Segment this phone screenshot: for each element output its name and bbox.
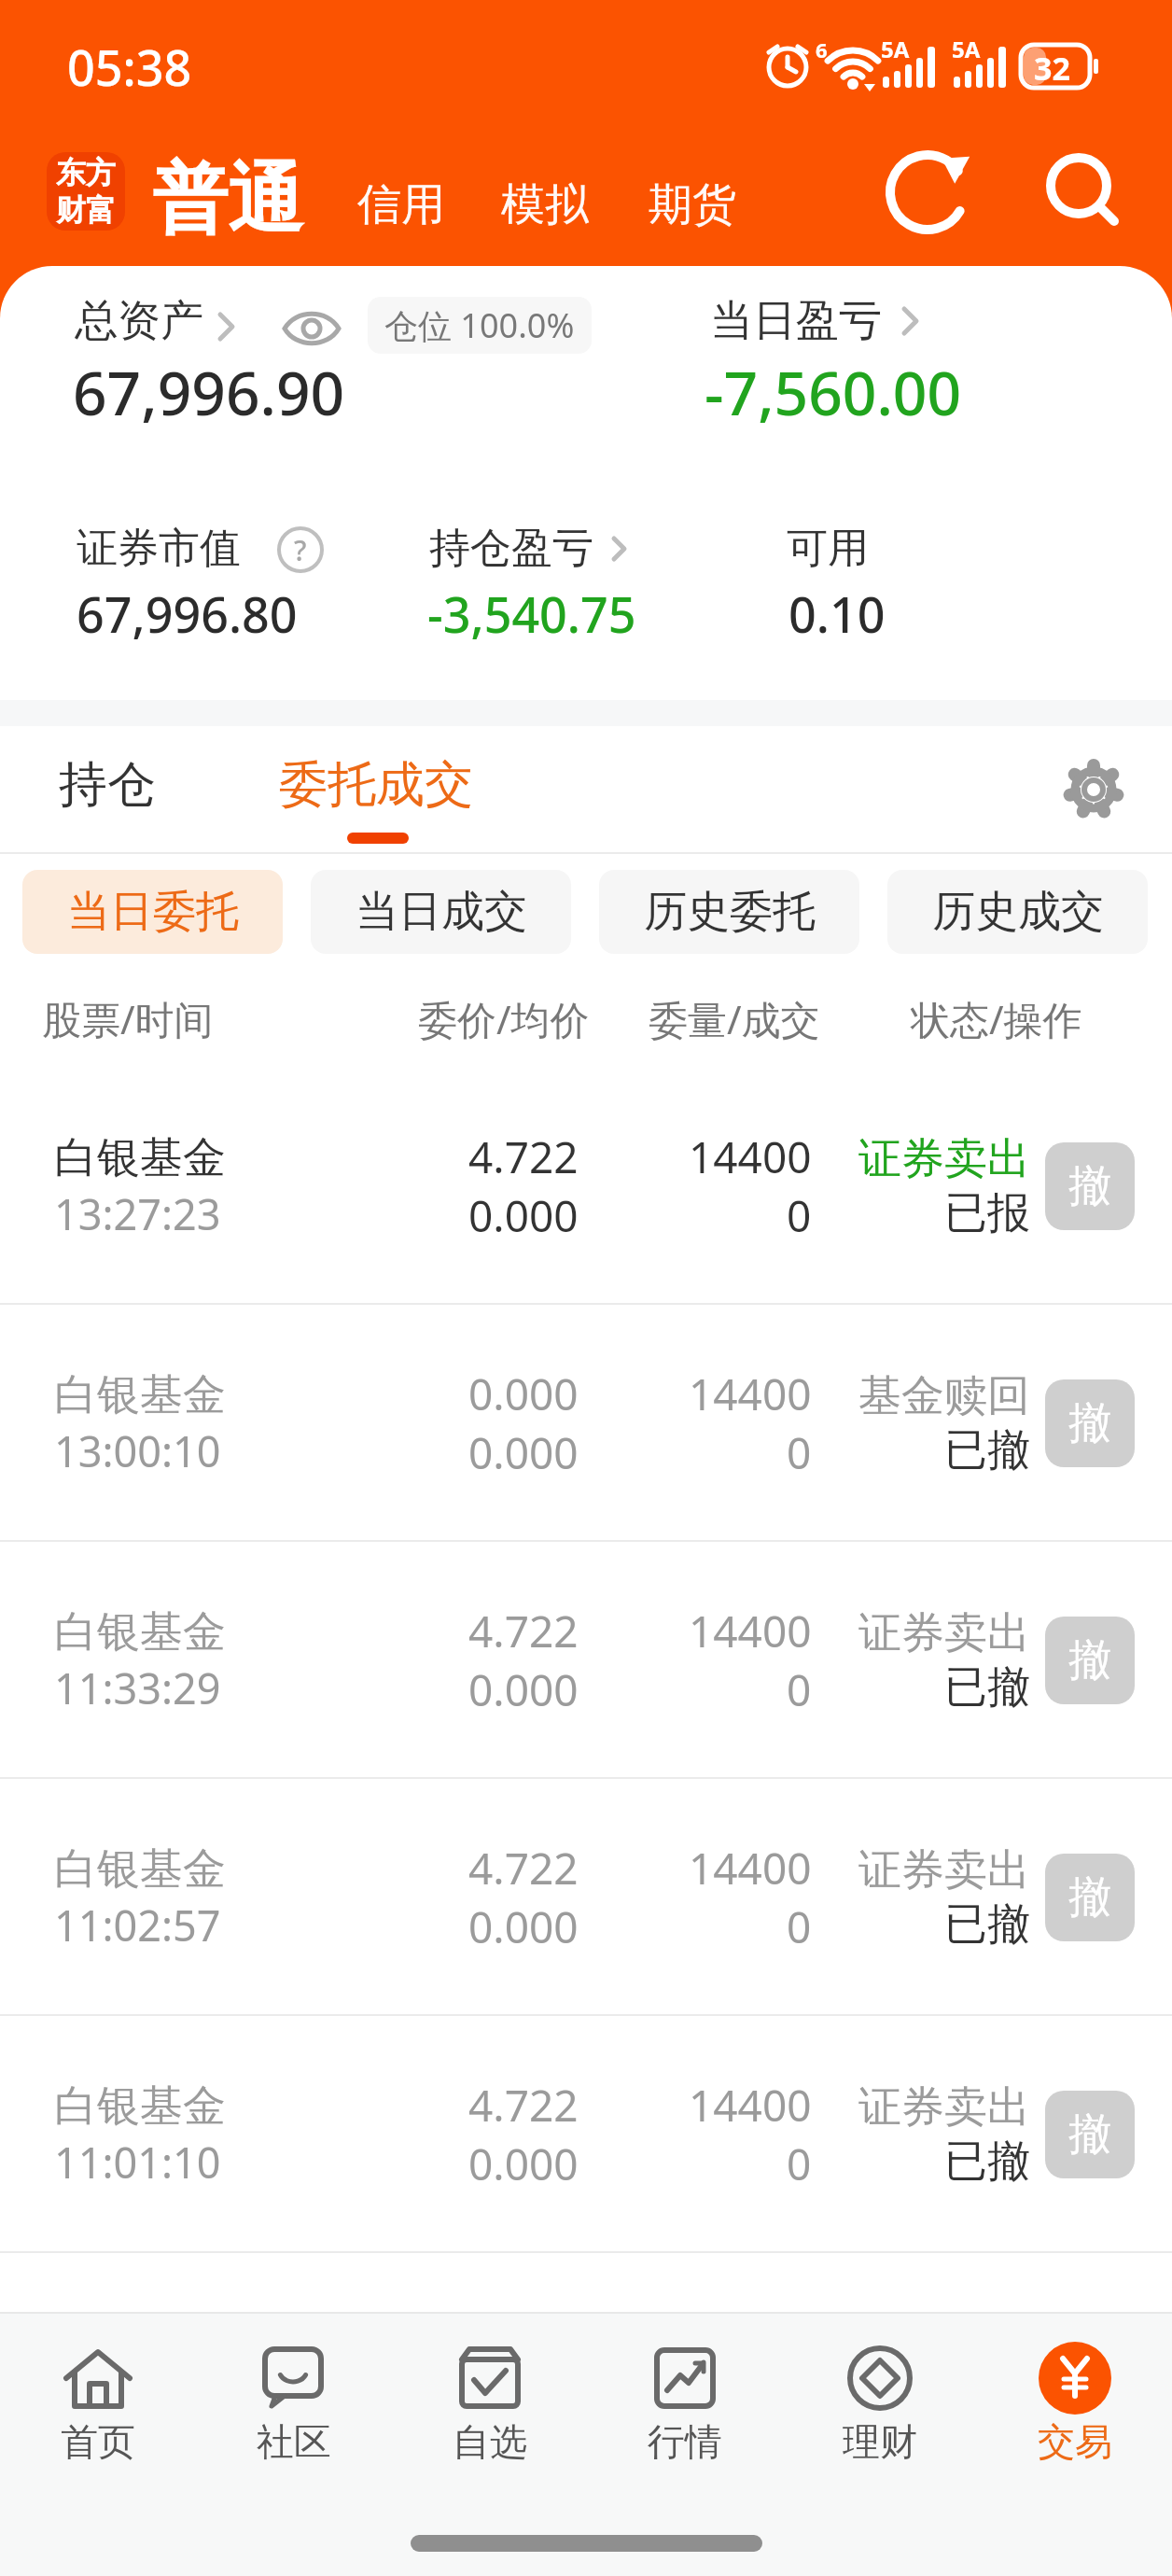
staticText: 0.000 (468, 1186, 579, 1245)
staticText: 0.000 (468, 1423, 579, 1482)
staticText: 当日委托 (67, 885, 239, 939)
staticText: 当日成交 (356, 885, 527, 939)
staticText: 白银基金 (54, 2079, 226, 2134)
staticText: 4.722 (468, 2076, 579, 2135)
staticText: 证券卖出 (858, 1843, 1030, 1897)
staticText: 已撤 (944, 2135, 1030, 2189)
button[interactable]: 撤 (1045, 2091, 1135, 2178)
staticText: 14400 (689, 1365, 812, 1423)
staticText: 撤 (1068, 1870, 1111, 1925)
staticText: 0.000 (468, 2135, 579, 2193)
staticText: 基金赎回 (858, 1369, 1030, 1423)
staticText: 证券市值 (77, 523, 241, 574)
staticText: 财富 (56, 191, 116, 229)
button[interactable]: 当日盈亏 (710, 294, 919, 348)
staticText: 可用 (787, 523, 869, 574)
button[interactable]: 白银基金 (0, 1068, 1172, 1305)
button[interactable]: 行情 (587, 2340, 782, 2465)
button[interactable]: 白银基金 (0, 1305, 1172, 1542)
staticText: 仓位 100.0% (384, 302, 575, 348)
staticText: 历史成交 (932, 885, 1104, 939)
staticText: 总资产 (75, 294, 203, 348)
button[interactable]: 白银基金 (0, 1542, 1172, 1779)
staticText: 已报 (944, 1186, 1030, 1240)
staticText: 0.000 (468, 1660, 579, 1719)
staticText: 11:02:57 (54, 1897, 221, 1953)
staticText: 委价/均价 (418, 992, 590, 1045)
button[interactable]: 历史成交 (887, 870, 1148, 954)
staticText: 0.000 (468, 1897, 579, 1956)
staticText: 委量/成交 (649, 992, 820, 1045)
staticText: 撤 (1068, 2107, 1111, 2162)
staticText: 行情 (648, 2418, 722, 2465)
button[interactable]: 撤 (1045, 1379, 1135, 1467)
button[interactable]: 撤 (1045, 1142, 1135, 1230)
staticText: 持仓盈亏 (429, 523, 593, 574)
staticText: 11:33:29 (54, 1659, 221, 1716)
staticText: 67,996.80 (77, 581, 298, 647)
staticText: 白银基金 (54, 1368, 226, 1422)
button[interactable]: 委托成交 (279, 754, 473, 816)
button[interactable]: 期货 (649, 177, 736, 232)
staticText: 已撤 (944, 1897, 1030, 1952)
button[interactable]: 白银基金 (0, 2016, 1172, 2253)
staticText: 4.722 (468, 1127, 579, 1186)
staticText: 撤 (1068, 1633, 1111, 1687)
button[interactable]: 撤 (1045, 1617, 1135, 1704)
staticText: 社区 (257, 2418, 331, 2465)
staticText: 白银基金 (54, 1131, 226, 1185)
staticText: 撤 (1068, 1396, 1111, 1450)
staticText: 0.000 (468, 1365, 579, 1423)
button[interactable]: 持仓盈亏 (429, 523, 627, 574)
staticText: 4.722 (468, 1602, 579, 1660)
button[interactable]: 白银基金 (0, 1779, 1172, 2016)
button[interactable] (1064, 760, 1123, 819)
staticText: 证券卖出 (858, 2080, 1030, 2135)
button[interactable]: 持仓 (59, 754, 156, 816)
button[interactable]: 普通 (152, 152, 303, 247)
button[interactable]: 社区 (196, 2340, 392, 2465)
staticText: 14400 (689, 1602, 812, 1660)
staticText: 6 (816, 35, 828, 63)
staticText: 证券卖出 (858, 1132, 1030, 1186)
staticText: 13:27:23 (54, 1185, 221, 1242)
staticText: 4.722 (468, 1839, 579, 1897)
button[interactable]: 信用 (357, 177, 445, 232)
staticText: 东方 (56, 154, 116, 191)
staticText: 0 (787, 2135, 812, 2193)
button[interactable]: 撤 (1045, 1854, 1135, 1941)
button[interactable]: 历史委托 (599, 870, 859, 954)
staticText: 13:00:10 (54, 1422, 221, 1479)
staticText: 05:38 (67, 34, 192, 100)
staticText: 自选 (453, 2418, 527, 2465)
button[interactable]: 首页 (0, 2340, 196, 2465)
staticText: 14400 (689, 1127, 812, 1186)
button[interactable]: 理财 (782, 2340, 977, 2465)
staticText: 14400 (689, 2076, 812, 2135)
staticText: -7,560.00 (705, 352, 962, 433)
staticText: 5A (881, 34, 910, 64)
staticText: 白银基金 (54, 1842, 226, 1897)
staticText: 首页 (61, 2418, 135, 2465)
staticText: 已撤 (944, 1423, 1030, 1477)
button[interactable] (1047, 153, 1122, 228)
staticText: 0 (787, 1897, 812, 1956)
staticText: 0.10 (788, 581, 886, 647)
staticText: 11:01:10 (54, 2134, 221, 2191)
button[interactable]: 当日委托 (22, 870, 283, 954)
button[interactable]: 当日成交 (311, 870, 571, 954)
staticText: 白银基金 (54, 1605, 226, 1659)
button[interactable]: 自选 (392, 2340, 587, 2465)
staticText: 撤 (1068, 1159, 1111, 1213)
staticText: 0 (787, 1660, 812, 1719)
staticText: 0 (787, 1423, 812, 1482)
staticText: 交易 (1038, 2418, 1112, 2465)
staticText: 理财 (843, 2418, 917, 2465)
button[interactable] (283, 311, 341, 346)
button[interactable] (888, 149, 972, 233)
button[interactable]: 模拟 (501, 177, 589, 232)
staticText: 已撤 (944, 1660, 1030, 1715)
staticText: 67,996.90 (73, 352, 345, 433)
staticText: 14400 (689, 1839, 812, 1897)
button[interactable]: 交易 (977, 2340, 1172, 2465)
